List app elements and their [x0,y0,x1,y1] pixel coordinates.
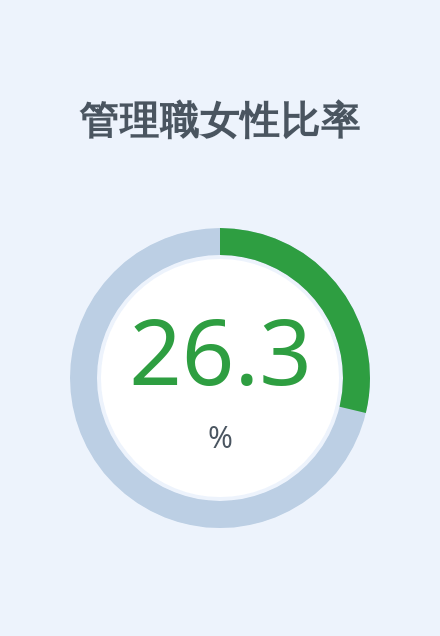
staticText: % [208,416,233,457]
staticText: 管理職女性比率 [0,96,440,145]
staticText: 26.3 [129,287,312,412]
button[interactable]: 管理職女性比率 [0,96,440,145]
button[interactable]: 管理職女性比率 26.3 パーセント [70,228,370,528]
